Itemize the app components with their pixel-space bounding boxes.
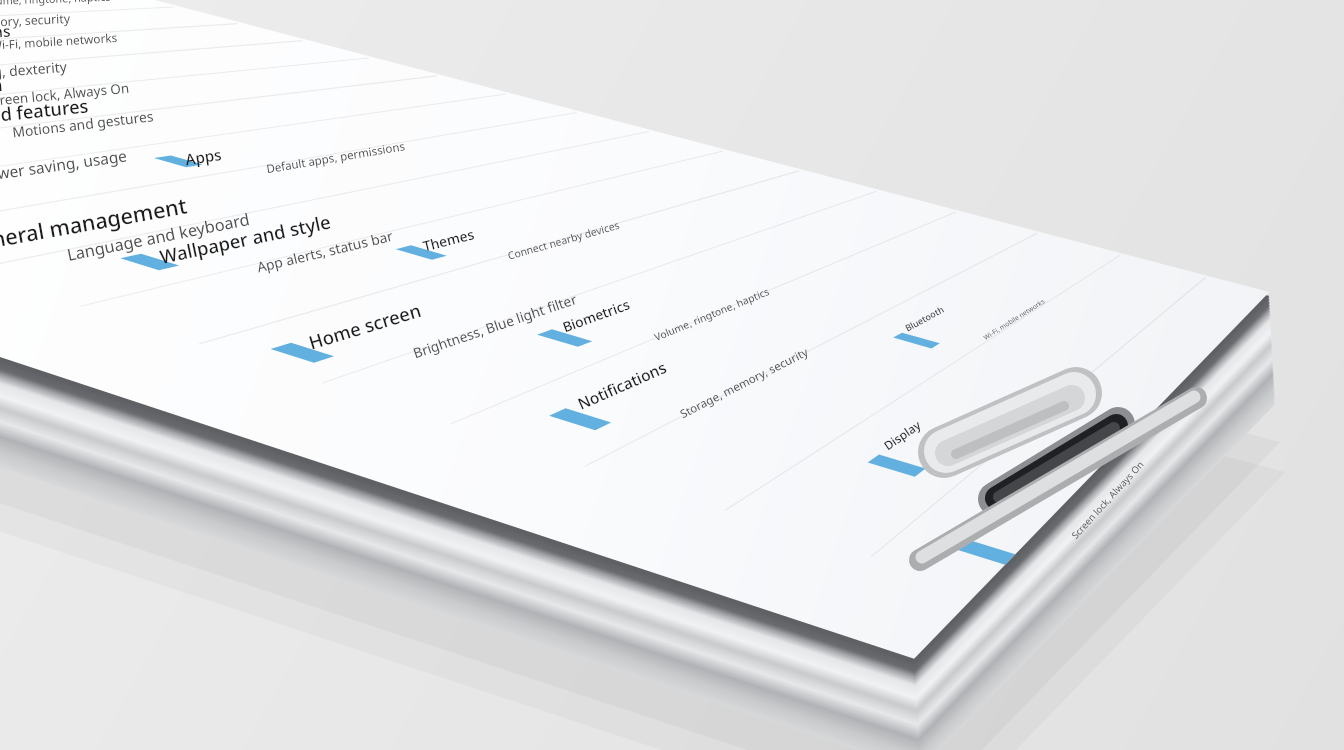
other: Smartphone settings list shown on a devi… <box>0 0 1344 750</box>
